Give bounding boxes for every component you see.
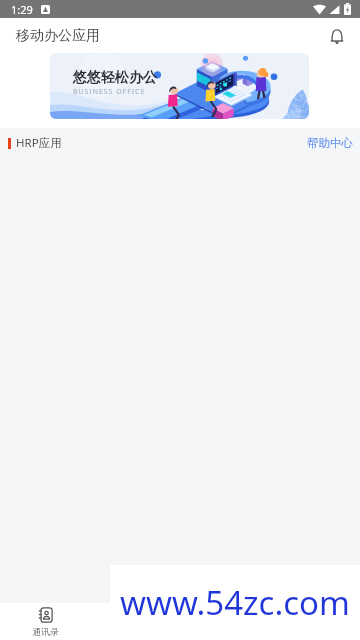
staticText: HRP应用 xyxy=(16,135,62,151)
staticText: 悠悠轻松办公 xyxy=(73,69,157,87)
button[interactable]: 悠悠轻松办公 xyxy=(50,53,309,119)
staticText: 帮助中心 xyxy=(307,136,353,150)
button[interactable]: Notifications xyxy=(326,25,348,47)
staticText: BUSINESS OFFICE xyxy=(73,87,146,97)
button[interactable]: 通讯录 xyxy=(0,603,90,640)
staticText: 1:29 xyxy=(11,2,33,17)
staticText: 通讯录 xyxy=(32,626,59,637)
staticText: www.54zc.com xyxy=(120,580,350,625)
staticText: 移动办公应用 xyxy=(16,27,100,45)
button[interactable]: 帮助中心 xyxy=(305,132,355,154)
